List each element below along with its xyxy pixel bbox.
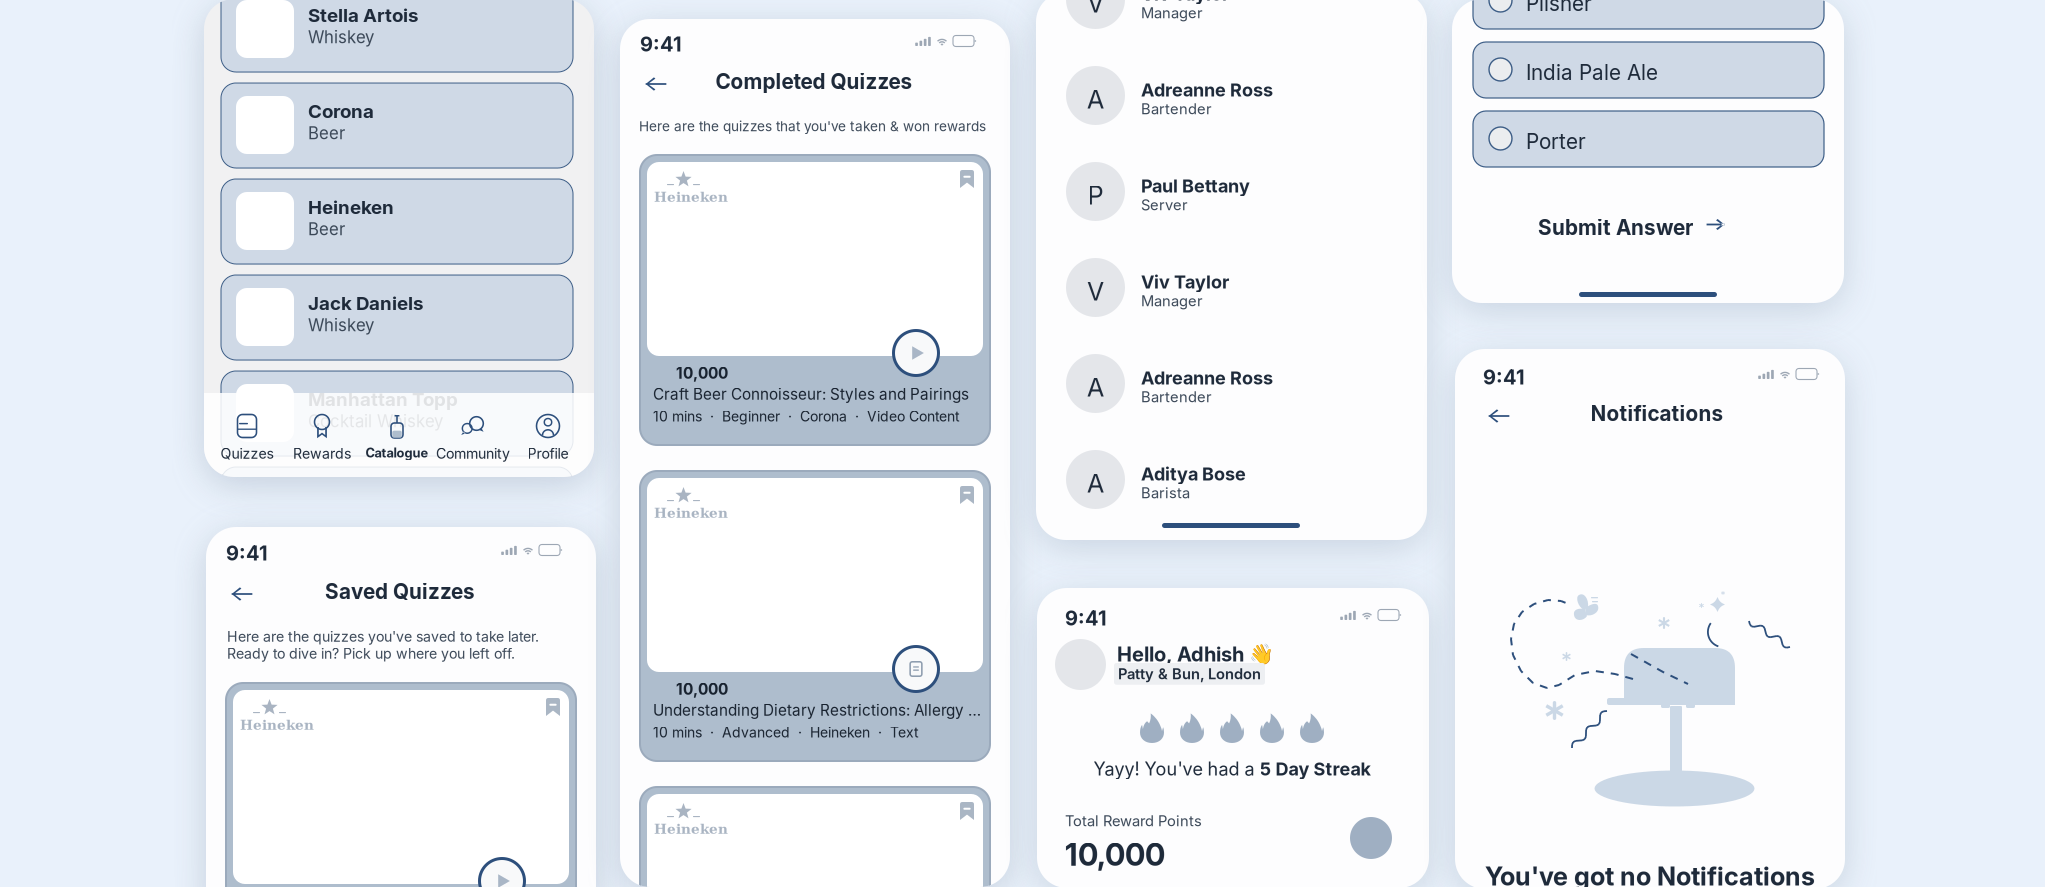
- staticText: 9:41: [640, 32, 682, 56]
- staticText: Profile: [527, 445, 568, 462]
- staticText: Understanding Dietary Restrictions: Alle…: [653, 701, 981, 719]
- button[interactable]: Quiz: [640, 787, 990, 887]
- staticText: Manhattan Topp: [308, 388, 458, 411]
- staticText: Corona: [308, 100, 374, 123]
- button[interactable]: Manhattan Topp: [221, 371, 573, 456]
- staticText: A: [1087, 468, 1104, 499]
- staticText: Barista: [1141, 484, 1190, 502]
- staticText: A: [1087, 372, 1104, 403]
- staticText: Viv Taylor: [1141, 0, 1229, 5]
- button[interactable]: Heineken: [640, 471, 990, 761]
- staticText: Craft Beer Connoisseur: Styles and Pairi…: [653, 385, 969, 403]
- button[interactable]: A: [1066, 436, 1406, 532]
- staticText: Catalogue: [365, 445, 428, 460]
- staticText: 10,000: [676, 680, 728, 699]
- staticText: Jack Daniels: [308, 292, 423, 315]
- button[interactable]: Community: [418, 413, 528, 469]
- staticText: Yayy! You've had a: [1093, 758, 1259, 780]
- button[interactable]: Corona: [221, 83, 573, 168]
- button[interactable]: Profile: [493, 413, 603, 469]
- staticText: 10 mins · Advanced · Heineken · Text: [653, 724, 919, 741]
- staticText: Pilsner: [1526, 0, 1592, 16]
- staticText: Heineken: [654, 821, 728, 837]
- button[interactable]: Heineken: [221, 179, 573, 264]
- button[interactable]: V: [1066, 0, 1406, 52]
- staticText: Whiskey: [308, 27, 374, 47]
- button[interactable]: India Pale Ale: [1473, 42, 1824, 98]
- button[interactable]: Porter: [1473, 111, 1824, 167]
- staticText: Hello, Adhish 👋: [1117, 642, 1274, 666]
- staticText: V: [1087, 276, 1104, 307]
- staticText: Bartender: [1141, 100, 1212, 118]
- button[interactable]: Submit Answer: [1538, 207, 1762, 241]
- staticText: Heineken: [308, 196, 394, 219]
- staticText: Guinness: [308, 484, 394, 507]
- button[interactable]: Jack Daniels: [221, 275, 573, 360]
- button[interactable]: Heineken: [640, 155, 990, 445]
- staticText: Submit Answer: [1538, 215, 1693, 240]
- staticText: You've got no Notifications: [1485, 861, 1815, 887]
- staticText: Heineken: [654, 505, 728, 521]
- staticText: Rewards: [293, 445, 351, 462]
- button[interactable]: Back: [640, 68, 672, 100]
- staticText: 9:41: [226, 541, 268, 565]
- staticText: 9:41: [1065, 606, 1107, 630]
- button[interactable]: Catalogue: [342, 413, 452, 469]
- button[interactable]: Quizzes: [192, 413, 302, 469]
- staticText: Heineken: [654, 189, 728, 205]
- staticText: Community: [436, 445, 510, 462]
- button[interactable]: A: [1066, 52, 1406, 148]
- staticText: 10 mins · Beginner · Corona · Video Cont…: [653, 408, 960, 425]
- staticText: Heineken: [240, 717, 314, 733]
- button[interactable]: Stella Artois: [221, 0, 573, 72]
- staticText: Paul Bettany: [1141, 175, 1250, 197]
- button[interactable]: Rewards: [267, 413, 377, 469]
- staticText: P: [1087, 180, 1103, 211]
- staticText: Stella Artois: [308, 4, 418, 27]
- staticText: 5 Day Streak: [1259, 758, 1370, 780]
- button[interactable]: Saved quiz, Heineken: [226, 683, 576, 887]
- staticText: Aditya Bose: [1141, 463, 1246, 485]
- staticText: Patty & Bun, London: [1118, 665, 1261, 683]
- staticText: Beer: [308, 219, 345, 239]
- button[interactable]: Pilsner: [1473, 0, 1824, 29]
- staticText: Quizzes: [220, 445, 273, 462]
- button[interactable]: Back: [1483, 400, 1515, 432]
- staticText: Server: [1141, 196, 1188, 214]
- staticText: Bartender: [1141, 388, 1212, 406]
- staticText: Completed Quizzes: [715, 69, 912, 94]
- staticText: 10,000: [1065, 836, 1165, 873]
- button[interactable]: Back: [226, 578, 258, 610]
- staticText: Saved Quizzes: [325, 579, 475, 604]
- staticText: A: [1087, 84, 1104, 115]
- staticText: Here are the quizzes that you've taken &…: [639, 118, 986, 134]
- staticText: Adreanne Ross: [1141, 79, 1273, 101]
- staticText: Manager: [1141, 292, 1203, 310]
- staticText: Total Reward Points: [1065, 812, 1202, 830]
- staticText: Manager: [1141, 4, 1203, 22]
- staticText: V: [1087, 0, 1104, 19]
- staticText: India Pale Ale: [1526, 60, 1658, 85]
- button[interactable]: A: [1066, 340, 1406, 436]
- staticText: Cocktail Whiskey: [308, 411, 443, 431]
- staticText: 9:41: [1483, 365, 1525, 389]
- staticText: Here are the quizzes you've saved to tak…: [227, 628, 539, 662]
- button[interactable]: Guinness: [221, 467, 573, 552]
- button[interactable]: V: [1066, 244, 1406, 340]
- staticText: Adreanne Ross: [1141, 367, 1273, 389]
- staticText: Beer: [308, 123, 345, 143]
- staticText: Whiskey: [308, 315, 374, 335]
- button[interactable]: P: [1066, 148, 1406, 244]
- staticText: 10,000: [676, 364, 728, 383]
- staticText: Notifications: [1590, 401, 1723, 426]
- staticText: Porter: [1526, 129, 1586, 154]
- staticText: Viv Taylor: [1141, 271, 1229, 293]
